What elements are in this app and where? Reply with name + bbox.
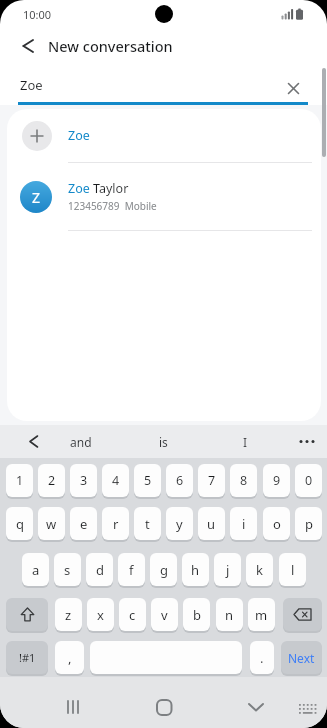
button[interactable]: . (250, 641, 274, 674)
button[interactable]: 4 (102, 464, 129, 497)
staticText: 2 (48, 472, 56, 489)
staticText: e (80, 515, 88, 533)
button[interactable]: t (134, 507, 161, 540)
button[interactable]: e (70, 507, 97, 540)
button[interactable]: r (102, 507, 129, 540)
button[interactable]: f (118, 553, 145, 586)
button[interactable] (283, 598, 322, 631)
button[interactable]: 9 (263, 464, 290, 497)
staticText: y (176, 515, 183, 533)
button[interactable]: n (216, 598, 243, 631)
staticText: f (129, 561, 134, 579)
button[interactable] (28, 435, 40, 448)
button[interactable] (6, 598, 48, 631)
button[interactable] (90, 641, 242, 674)
button[interactable]: w (38, 507, 65, 540)
staticText: l (291, 561, 295, 579)
staticText: I (243, 434, 248, 450)
button[interactable]: is (138, 425, 188, 458)
staticText: b (193, 606, 201, 624)
button[interactable] (298, 425, 318, 458)
button[interactable]: k (246, 553, 273, 586)
staticText: z (65, 606, 72, 624)
button[interactable]: q (6, 507, 33, 540)
button[interactable]: u (198, 507, 225, 540)
staticText: n (225, 606, 234, 624)
button[interactable]: 6 (166, 464, 193, 497)
button[interactable]: 7 (198, 464, 225, 497)
staticText: Zoe Taylor (68, 180, 129, 197)
button[interactable]: c (119, 598, 146, 631)
button[interactable]: 5 (134, 464, 161, 497)
button[interactable]: d (86, 553, 113, 586)
button[interactable]: l (279, 553, 306, 586)
staticText: !#1 (19, 650, 36, 665)
staticText: 1 (16, 472, 24, 489)
button[interactable]: v (151, 598, 178, 631)
button[interactable]: h (182, 553, 209, 586)
staticText: i (242, 515, 246, 533)
staticText: c (129, 606, 136, 624)
button[interactable]: !#1 (6, 641, 48, 674)
button[interactable]: Z (7, 163, 321, 230)
staticText: o (273, 515, 281, 533)
button[interactable]: and (56, 425, 106, 458)
button[interactable]: Next (281, 641, 322, 674)
button[interactable]: z (55, 598, 82, 631)
button[interactable] (299, 677, 317, 728)
staticText: p (305, 515, 313, 533)
staticText: u (207, 515, 216, 533)
staticText: . (260, 649, 264, 667)
staticText: Next (288, 650, 315, 666)
button[interactable]: 2 (38, 464, 65, 497)
staticText: v (161, 606, 168, 624)
button[interactable]: i (230, 507, 257, 540)
button[interactable]: 0 (295, 464, 322, 497)
staticText: 123456789 Mobile (68, 199, 157, 213)
button[interactable]: a (22, 553, 49, 586)
button[interactable]: 8 (230, 464, 257, 497)
staticText: a (32, 561, 40, 579)
button[interactable]: p (295, 507, 322, 540)
staticText: Z (32, 188, 41, 207)
staticText: x (97, 606, 104, 624)
button[interactable]: b (183, 598, 210, 631)
button[interactable]: 1 (6, 464, 33, 497)
staticText: 8 (240, 472, 248, 489)
staticText: is (159, 434, 168, 450)
button[interactable]: 3 (70, 464, 97, 497)
staticText: 4 (112, 472, 120, 489)
button[interactable]: o (263, 507, 290, 540)
button[interactable]: Zoe (7, 109, 321, 162)
button[interactable] (288, 83, 299, 94)
staticText: d (96, 561, 104, 579)
button[interactable] (22, 39, 36, 53)
staticText: 9 (273, 472, 281, 489)
staticText: and (70, 434, 92, 450)
button[interactable] (150, 677, 178, 728)
staticText: Zoe (20, 76, 43, 94)
staticText: 3 (80, 472, 88, 489)
staticText: w (46, 515, 57, 533)
staticText: h (191, 561, 200, 579)
button[interactable]: g (150, 553, 177, 586)
staticText: 6 (176, 472, 184, 489)
staticText: r (113, 515, 119, 533)
staticText: 10:00 (23, 7, 52, 22)
staticText: q (16, 515, 24, 533)
staticText: s (64, 561, 71, 579)
button[interactable]: y (166, 507, 193, 540)
button[interactable]: m (248, 598, 275, 631)
button[interactable]: x (87, 598, 114, 631)
button[interactable]: s (54, 553, 81, 586)
staticText: 7 (208, 472, 216, 489)
button[interactable]: j (214, 553, 241, 586)
button[interactable] (242, 677, 270, 728)
button[interactable]: , (55, 641, 84, 674)
button[interactable] (60, 677, 88, 728)
staticText: k (256, 561, 263, 579)
staticText: t (145, 515, 150, 533)
staticText: Zoe (68, 127, 90, 144)
button[interactable]: I (220, 425, 270, 458)
staticText: 5 (144, 472, 152, 489)
